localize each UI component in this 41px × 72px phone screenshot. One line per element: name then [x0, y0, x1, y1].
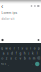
staticText: e	[9, 47, 11, 50]
button[interactable]: Search	[30, 4, 33, 8]
staticText: k	[32, 52, 34, 55]
button[interactable]: Add	[0, 37, 5, 43]
staticText: ⇧	[1, 57, 4, 60]
staticText: m	[33, 57, 36, 60]
staticText: l	[37, 52, 38, 55]
button[interactable]: More	[37, 4, 40, 8]
staticText: i	[30, 47, 31, 50]
staticText: a	[3, 52, 5, 55]
staticText: dolor sit	[1, 17, 14, 21]
staticText: n	[29, 57, 31, 60]
staticText: b	[24, 57, 26, 60]
staticText: f	[16, 52, 17, 55]
staticText: y	[22, 47, 24, 50]
staticText: ,	[8, 62, 9, 66]
staticText: z	[6, 57, 8, 60]
staticText: q	[1, 47, 3, 50]
staticText: t	[18, 47, 19, 50]
staticText: r	[14, 47, 15, 50]
staticText: p	[38, 47, 40, 50]
staticText: s	[7, 52, 9, 55]
staticText: ‹	[1, 2, 3, 10]
staticText: h	[24, 52, 26, 55]
staticText: w	[5, 47, 7, 50]
staticText: j	[28, 52, 29, 55]
staticText: ?123	[0, 62, 6, 66]
button[interactable]: Back	[0, 4, 4, 8]
staticText: ⌫	[37, 57, 41, 60]
staticText: .	[32, 62, 33, 66]
staticText: d	[11, 52, 13, 55]
staticText: g	[19, 52, 21, 55]
staticText: Lorem ips	[1, 11, 17, 15]
button[interactable]: Info	[33, 4, 37, 8]
staticText: u	[26, 47, 28, 50]
button[interactable]: Send	[36, 37, 41, 43]
staticText: o	[34, 47, 36, 50]
staticText: v	[19, 57, 21, 60]
staticText: x	[10, 57, 12, 60]
staticText: c	[15, 57, 17, 60]
